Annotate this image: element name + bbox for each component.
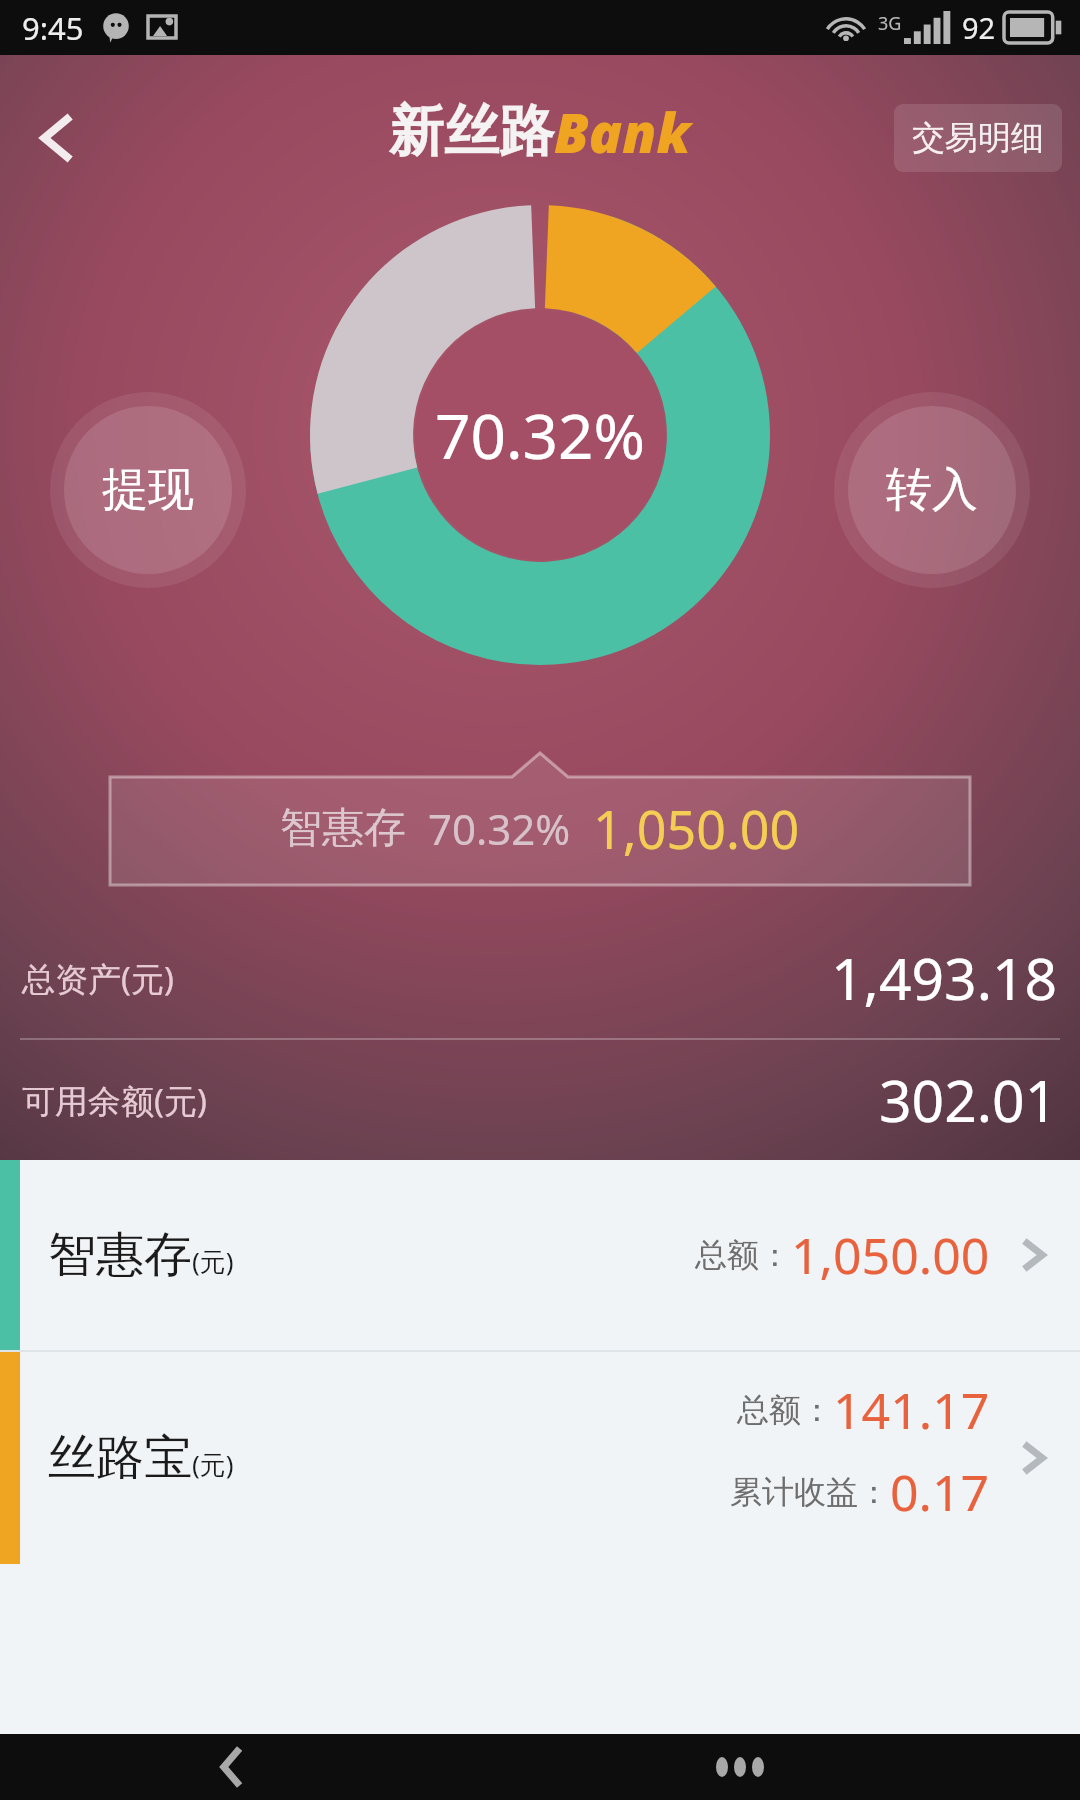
- button[interactable]: 丝路宝: [0, 1352, 1080, 1564]
- staticText: 70.32%: [435, 393, 645, 477]
- button[interactable]: 交易明细: [894, 104, 1062, 172]
- staticText: 可用余额(元): [22, 1078, 207, 1123]
- staticText: Bank: [554, 94, 691, 169]
- staticText: 提现: [102, 461, 194, 519]
- staticText: 1,050.00: [593, 793, 800, 864]
- button[interactable]: Back: [200, 1734, 266, 1800]
- staticText: 1,050.00: [791, 1221, 990, 1289]
- staticText: 智惠存: [48, 1225, 192, 1285]
- button[interactable]: Back: [16, 95, 102, 181]
- staticText: (元): [192, 1446, 234, 1482]
- button[interactable]: 提现: [48, 390, 248, 590]
- staticText: 总资产(元): [22, 956, 174, 1001]
- staticText: 3G: [878, 11, 902, 36]
- staticText: 302.01: [879, 1061, 1058, 1139]
- button[interactable]: 智惠存: [0, 1160, 1080, 1350]
- staticText: 9:45: [22, 7, 84, 49]
- staticText: 总额：: [695, 1235, 791, 1275]
- staticText: 总额：: [737, 1390, 833, 1430]
- staticText: 0.17: [890, 1458, 990, 1526]
- staticText: 累计收益：: [730, 1472, 890, 1512]
- staticText: 交易明细: [912, 117, 1044, 159]
- staticText: 141.17: [833, 1376, 990, 1444]
- staticText: 92: [962, 8, 996, 47]
- button[interactable]: Menu: [700, 1734, 780, 1800]
- staticText: 新丝路: [389, 97, 554, 166]
- staticText: 70.32%: [428, 800, 571, 857]
- staticText: (元): [192, 1243, 234, 1279]
- staticText: 转入: [886, 461, 978, 519]
- button[interactable]: 转入: [832, 390, 1032, 590]
- staticText: 智惠存: [280, 802, 406, 855]
- staticText: 丝路宝: [48, 1428, 192, 1488]
- staticText: 1,493.18: [831, 939, 1058, 1017]
